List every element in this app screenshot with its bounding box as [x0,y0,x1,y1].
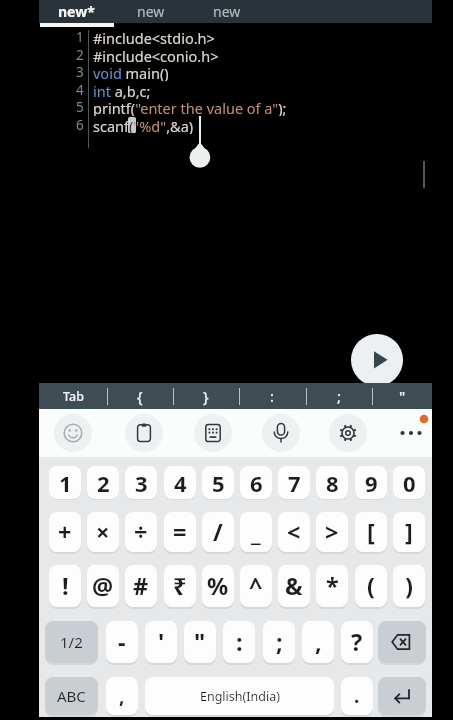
button[interactable]: < [278,512,310,552]
staticText: & [285,570,303,602]
button[interactable]: 9 [355,466,387,499]
button[interactable] [351,334,403,386]
staticText: ÷ [134,516,148,548]
staticText: > [325,516,339,548]
button[interactable]: 0 [393,466,425,499]
staticText: 4 [174,468,187,498]
staticText: ! [62,570,69,602]
button[interactable]: ; [306,383,372,409]
button[interactable]: / [202,512,234,552]
button[interactable] [54,414,92,452]
button[interactable]: new* [39,0,114,23]
staticText: # [133,570,149,602]
button[interactable]: 5 [202,466,234,499]
button[interactable]: { [107,383,173,409]
button[interactable]: ^ [240,565,272,607]
staticText: 2 [97,468,110,498]
staticText: : [236,626,243,658]
staticText: ABC [57,686,86,706]
button[interactable]: = [164,512,196,552]
button[interactable]: : [239,383,305,409]
button[interactable]: new [113,0,188,23]
staticText: ^ [249,570,263,602]
staticText: % [207,570,229,602]
button[interactable]: ) [393,565,425,607]
staticText: #include<conio.h> [93,46,219,64]
button[interactable]: + [49,512,81,552]
staticText: ; [337,386,341,406]
button[interactable]: % [202,565,234,607]
button[interactable] [378,677,426,715]
staticText: { [137,386,143,406]
staticText: @ [92,570,114,602]
staticText: new [137,2,165,21]
button[interactable]: ₹ [164,565,196,607]
button[interactable]: _ [240,512,272,552]
button[interactable]: × [87,512,119,552]
button[interactable]: 6 [240,466,272,499]
button[interactable]: 7 [278,466,310,499]
button[interactable] [329,414,367,452]
button[interactable]: ? [341,621,373,663]
button[interactable]: # [125,565,157,607]
button[interactable]: 3 [125,466,157,499]
button[interactable]: - [106,621,138,663]
staticText: Tab [63,388,84,405]
button[interactable] [262,414,300,452]
staticText: 8 [326,468,339,498]
button[interactable]: : [223,621,255,663]
staticText: 9 [365,468,378,498]
button[interactable]: . [341,677,373,715]
button[interactable]: " [372,383,432,409]
staticText: . [354,683,360,709]
button[interactable]: ] [393,512,425,552]
staticText: 2 [76,46,84,64]
staticText: #include<stdio.h> [93,28,215,46]
button[interactable]: 2 [87,466,119,499]
staticText: new* [58,2,95,21]
staticText: 6 [76,116,84,134]
button[interactable]: English(India) [145,677,334,715]
button[interactable]: new [189,0,265,23]
button[interactable]: , [302,621,334,663]
staticText: ? [351,626,363,658]
button[interactable]: > [316,512,348,552]
staticText: 3 [76,63,84,81]
button[interactable]: [ [355,512,387,552]
button[interactable]: , [106,677,138,715]
button[interactable]: ÷ [125,512,157,552]
staticText: scanf("%d",&a) [93,116,194,134]
staticText: ] [405,516,413,548]
button[interactable]: ! [49,565,81,607]
button[interactable]: 1 [49,466,81,499]
button[interactable]: " [184,621,216,663]
button[interactable]: } [173,383,239,409]
button[interactable]: ' [145,621,177,663]
staticText: 7 [288,468,301,498]
staticText: ; [276,626,283,658]
staticText: : [270,386,274,406]
button[interactable]: ( [355,565,387,607]
button[interactable]: 8 [316,466,348,499]
button[interactable]: 4 [164,466,196,499]
staticText: ' [158,626,165,658]
button[interactable]: ; [263,621,295,663]
button[interactable]: @ [87,565,119,607]
staticText: × [96,516,110,548]
staticText: < [287,516,301,548]
button[interactable]: 1/2 [45,621,98,663]
staticText: , [119,683,125,709]
staticText: new [213,2,241,21]
button[interactable] [194,414,232,452]
button[interactable]: ABC [45,677,98,715]
button[interactable] [125,414,163,452]
button[interactable] [378,621,426,663]
staticText: English(India) [200,688,280,705]
button[interactable] [392,414,430,452]
button[interactable]: & [278,565,310,607]
staticText: printf("enter the value of a"); [93,98,287,116]
button[interactable]: * [316,565,348,607]
button[interactable]: Tab [39,383,108,409]
staticText: - [118,626,126,658]
staticText: 1 [76,28,84,46]
